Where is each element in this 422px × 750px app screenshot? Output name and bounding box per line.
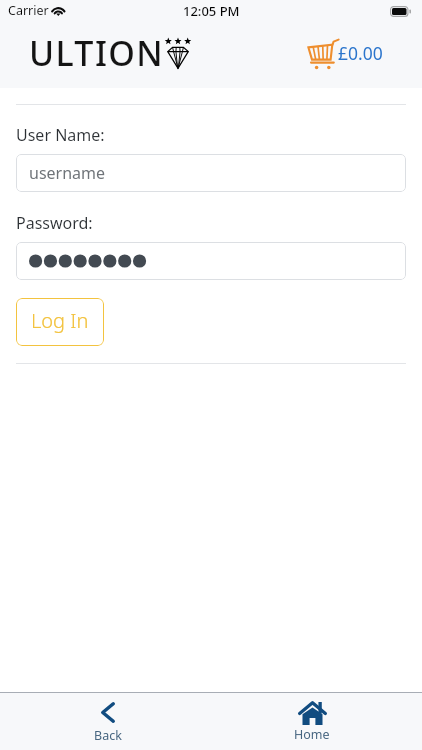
staticText: £0.00 — [338, 41, 383, 65]
staticText: 12:05 PM — [183, 2, 240, 20]
staticText: username — [29, 162, 106, 184]
staticText: Back — [94, 727, 122, 744]
button[interactable]: Back — [55, 693, 160, 750]
button[interactable]: Home — [259, 693, 365, 750]
button[interactable]: username — [16, 154, 406, 192]
button[interactable]: Shopping cart, total 0.00 pounds — [302, 34, 388, 76]
staticText: Home — [294, 726, 330, 743]
staticText: ULTION — [29, 30, 165, 76]
staticText: Carrier — [8, 2, 49, 19]
button[interactable] — [16, 242, 406, 280]
staticText: Password: — [16, 212, 93, 234]
staticText: User Name: — [16, 124, 105, 146]
button[interactable]: Log In — [16, 298, 104, 346]
staticText: Log In — [31, 307, 89, 334]
